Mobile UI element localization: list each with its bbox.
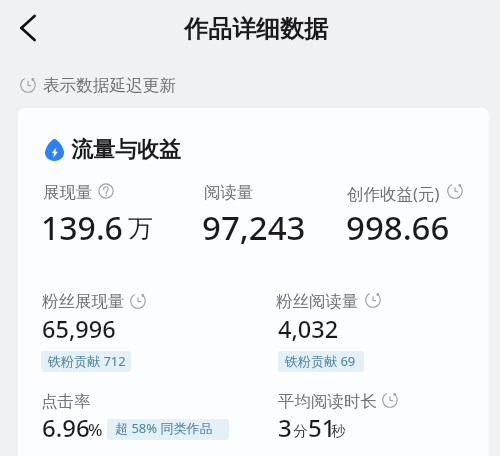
- staticText: 粉丝阅读量: [276, 291, 359, 312]
- staticText: 3: [278, 411, 292, 444]
- staticText: 平均阅读时长: [278, 391, 377, 412]
- staticText: 97,243: [202, 205, 306, 250]
- staticText: 创作收益(元): [347, 182, 440, 205]
- button[interactable]: [40, 387, 265, 442]
- staticText: 秒: [331, 422, 346, 440]
- button[interactable]: [42, 134, 182, 164]
- button[interactable]: [345, 178, 485, 228]
- button[interactable]: [40, 287, 265, 372]
- button[interactable]: 铁粉贡献 712: [41, 351, 131, 372]
- staticText: 铁粉贡献 712: [48, 352, 126, 370]
- button[interactable]: [275, 387, 475, 442]
- button[interactable]: [201, 178, 341, 228]
- button[interactable]: [40, 178, 190, 228]
- staticText: 粉丝展现量: [42, 291, 125, 312]
- staticText: 铁粉贡献 69: [285, 352, 356, 370]
- staticText: 998.66: [346, 205, 450, 250]
- staticText: 展现量: [43, 182, 93, 203]
- staticText: 阅读量: [204, 182, 254, 203]
- button[interactable]: [275, 287, 475, 372]
- staticText: 139.6: [41, 206, 123, 250]
- button[interactable]: [18, 72, 178, 96]
- staticText: %: [88, 418, 103, 441]
- button[interactable]: 超 58% 同类作品: [107, 419, 229, 440]
- staticText: 51: [308, 411, 336, 444]
- staticText: 流量与收益: [71, 136, 181, 164]
- staticText: 6.96: [42, 411, 90, 444]
- button[interactable]: Back: [5, 5, 50, 50]
- staticText: 作品详细数据: [184, 14, 328, 44]
- staticText: 4,032: [278, 313, 339, 345]
- staticText: 超 58% 同类作品: [115, 419, 213, 437]
- staticText: 分: [293, 422, 308, 440]
- staticText: 65,996: [42, 313, 116, 345]
- staticText: 点击率: [41, 391, 91, 412]
- staticText: 万: [128, 213, 153, 244]
- button[interactable]: 铁粉贡献 69: [278, 351, 364, 372]
- staticText: 表示数据延迟更新: [43, 75, 176, 96]
